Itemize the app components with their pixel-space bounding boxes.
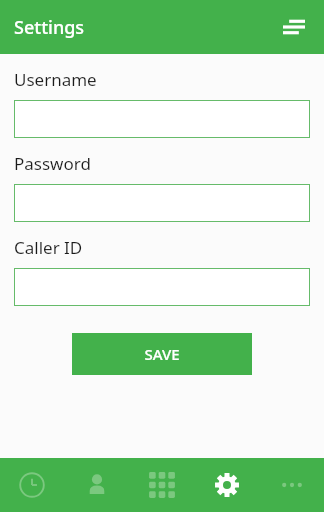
button[interactable]: Settings [194, 458, 259, 512]
button[interactable] [14, 184, 310, 222]
button[interactable]: Menu [274, 7, 314, 47]
button[interactable]: More [259, 458, 324, 512]
button[interactable]: Recents [0, 458, 64, 512]
staticText: Password [14, 152, 91, 175]
staticText: Caller ID [14, 236, 83, 259]
button[interactable]: SAVE [72, 333, 252, 375]
staticText: Username [14, 68, 97, 91]
staticText: Settings [14, 15, 85, 40]
button[interactable]: Dialpad [129, 458, 194, 512]
button[interactable] [14, 268, 310, 306]
button[interactable]: Contacts [64, 458, 129, 512]
staticText: SAVE [144, 344, 180, 364]
button[interactable] [14, 100, 310, 138]
